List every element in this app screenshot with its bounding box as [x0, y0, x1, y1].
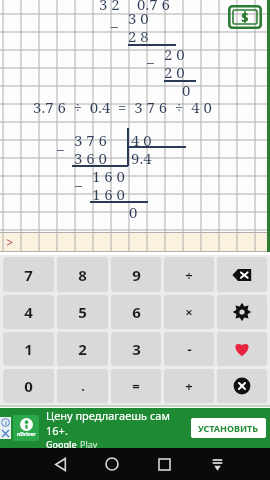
- button[interactable]: Settings: [217, 295, 267, 329]
- staticText: nDriver: [17, 431, 36, 438]
- staticText: Play: [80, 438, 98, 448]
- button[interactable]: Clear: [217, 369, 267, 403]
- staticText: 2 0: [164, 44, 185, 64]
- button[interactable]: +: [164, 369, 214, 403]
- staticText: 3 2: [99, 0, 120, 14]
- staticText: _: [57, 133, 64, 153]
- staticText: 7: [24, 265, 33, 285]
- button[interactable]: 8: [57, 257, 108, 292]
- staticText: 1: [24, 339, 33, 359]
- staticText: Цену предлагаешь сам 16+.: [46, 408, 187, 438]
- button[interactable]: Backspace: [217, 257, 267, 292]
- button[interactable]: ×: [164, 295, 214, 329]
- staticText: 0: [24, 376, 33, 396]
- button[interactable]: УСТАНОВИТЬ: [198, 422, 259, 434]
- staticText: 3: [132, 339, 141, 359]
- button[interactable]: 9: [111, 257, 161, 292]
- staticText: 8: [78, 265, 87, 285]
- button[interactable]: Hide keyboard: [191, 448, 244, 480]
- staticText: 0: [182, 80, 191, 100]
- staticText: S: [241, 8, 249, 26]
- staticText: _: [75, 169, 82, 189]
- staticText: 4 0: [131, 130, 152, 150]
- staticText: 4: [24, 302, 33, 322]
- staticText: УСТАНОВИТЬ: [198, 422, 259, 434]
- button[interactable]: 0: [3, 369, 54, 403]
- button[interactable]: 5: [57, 295, 108, 329]
- staticText: ×: [185, 303, 193, 321]
- staticText: i: [5, 419, 7, 427]
- staticText: =: [132, 377, 140, 395]
- button[interactable]: 2: [57, 332, 108, 366]
- button[interactable]: ÷: [164, 257, 214, 292]
- button[interactable]: 1: [3, 332, 54, 366]
- staticText: 6: [132, 302, 141, 322]
- staticText: Google: [46, 438, 80, 448]
- staticText: _: [111, 10, 118, 30]
- staticText: 0: [129, 202, 138, 222]
- staticText: 3 6 0: [74, 148, 107, 168]
- button[interactable]: .: [57, 369, 108, 403]
- staticText: 3 0: [128, 8, 149, 28]
- staticText: ÷: [185, 266, 193, 284]
- staticText: 3.7 6 ÷ 0.4 = 3 7 6 ÷ 4 0: [33, 97, 212, 117]
- button[interactable]: Close ad: [0, 428, 11, 439]
- staticText: 0.7 6: [137, 0, 170, 14]
- staticText: .: [81, 377, 85, 395]
- staticText: 2: [78, 339, 87, 359]
- staticText: 1 6 0: [92, 184, 125, 204]
- staticText: 5: [78, 302, 87, 322]
- button[interactable]: =: [111, 369, 161, 403]
- staticText: 2 8: [128, 26, 149, 46]
- staticText: 2 0: [164, 62, 185, 82]
- staticText: 1 6 0: [92, 166, 125, 186]
- staticText: >: [6, 233, 14, 251]
- staticText: 9.4: [131, 148, 152, 168]
- button[interactable]: Home: [86, 448, 138, 480]
- button[interactable]: 4: [3, 295, 54, 329]
- button[interactable]: Favorites: [217, 332, 267, 366]
- button[interactable]: 3: [111, 332, 161, 366]
- staticText: +: [185, 377, 193, 395]
- button[interactable]: 6: [111, 295, 161, 329]
- button[interactable]: Recents: [138, 448, 191, 480]
- staticText: -: [187, 340, 192, 358]
- button[interactable]: Ad info: [0, 417, 11, 428]
- staticText: 3 7 6: [74, 130, 107, 150]
- button[interactable]: -: [164, 332, 214, 366]
- staticText: _: [147, 46, 154, 66]
- staticText: 9: [132, 265, 141, 285]
- button[interactable]: 7: [3, 257, 54, 292]
- button[interactable]: Buy premium: [228, 5, 262, 29]
- button[interactable]: Back: [34, 448, 86, 480]
